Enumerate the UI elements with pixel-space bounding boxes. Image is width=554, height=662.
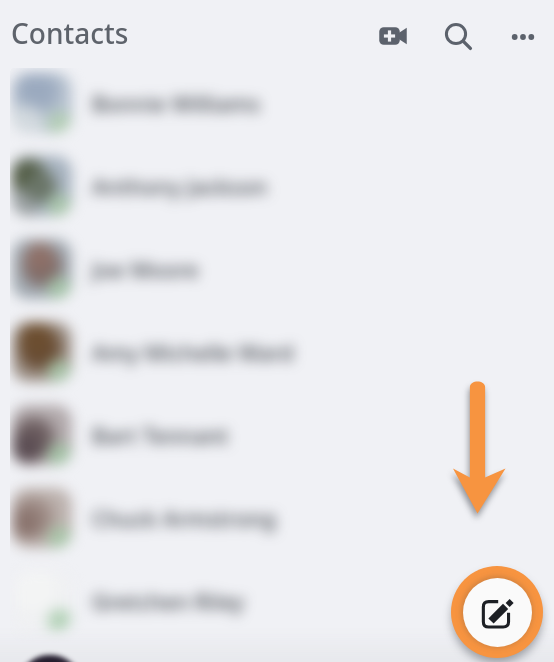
button[interactable]: Bonnie Williams	[10, 61, 554, 144]
staticText: Bart Tennant	[92, 420, 229, 450]
staticText: Bonnie Williams	[92, 88, 261, 118]
staticText: Joe Moore	[92, 254, 199, 284]
button[interactable]: New video call	[367, 10, 419, 62]
button[interactable]: Anthony Jackson	[10, 144, 554, 227]
button[interactable]: Chuck Armstrong	[10, 476, 554, 559]
staticText: Gretchen Riley	[92, 586, 245, 616]
button[interactable]: Search	[433, 10, 485, 62]
staticText: Anthony Jackson	[92, 171, 267, 201]
button[interactable]: Joe Moore	[10, 227, 554, 310]
staticText: Amy Michelle Ward	[92, 337, 294, 367]
staticText: Chuck Armstrong	[92, 503, 276, 533]
button[interactable]: Bart Tennant	[10, 393, 554, 476]
button[interactable]: Gretchen Riley	[10, 559, 554, 642]
button[interactable]: More options	[497, 10, 549, 62]
button[interactable]: Amy Michelle Ward	[10, 310, 554, 393]
button[interactable]: Compose new message	[451, 566, 543, 658]
staticText: Contacts	[11, 14, 129, 52]
